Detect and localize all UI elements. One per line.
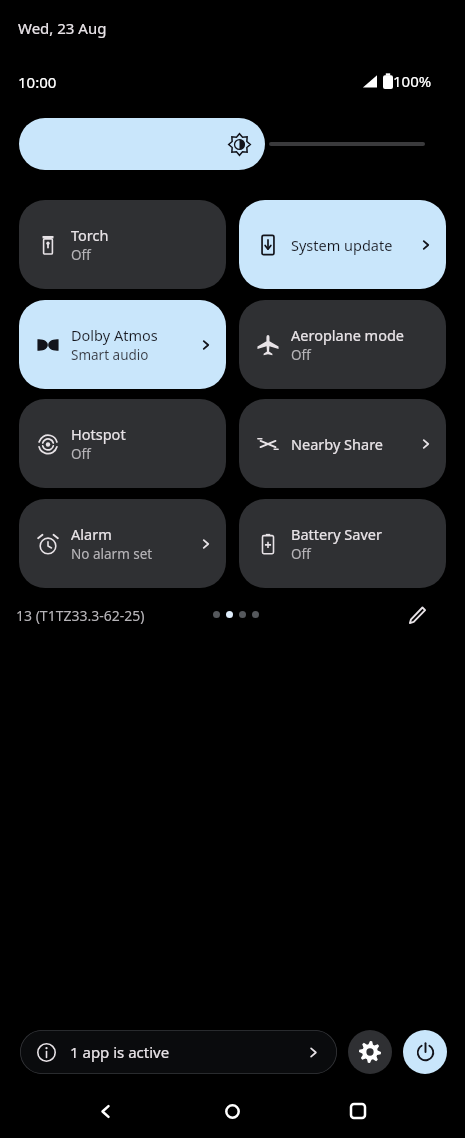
- staticText: 13 (T1TZ33.3-62-25): [16, 606, 145, 625]
- button[interactable]: Battery Saver: [239, 499, 446, 588]
- staticText: Smart audio: [71, 346, 149, 364]
- button[interactable]: System update: [239, 200, 446, 289]
- staticText: Aeroplane mode: [291, 325, 405, 345]
- button[interactable]: Power: [403, 1030, 447, 1074]
- button[interactable]: Dolby Atmos: [19, 300, 226, 389]
- button[interactable]: Nearby Share: [239, 399, 446, 488]
- button[interactable]: Torch: [19, 200, 226, 289]
- button[interactable]: Brightness: [19, 118, 425, 170]
- button[interactable]: Settings: [348, 1030, 392, 1074]
- staticText: Battery Saver: [291, 524, 382, 544]
- staticText: Off: [71, 445, 91, 463]
- button[interactable]: Back: [85, 1091, 125, 1131]
- button[interactable]: Home: [212, 1091, 252, 1131]
- staticText: 10:00: [18, 72, 57, 92]
- staticText: Wed, 23 Aug: [18, 18, 107, 38]
- staticText: Dolby Atmos: [71, 325, 158, 345]
- staticText: No alarm set: [71, 545, 153, 563]
- button[interactable]: Edit tiles: [400, 598, 434, 632]
- staticText: 1 app is active: [70, 1042, 170, 1062]
- staticText: Hotspot: [71, 424, 126, 444]
- staticText: Alarm: [71, 524, 112, 544]
- staticText: Torch: [71, 225, 109, 245]
- button[interactable]: 1 app is active: [20, 1030, 337, 1074]
- button[interactable]: Recents: [338, 1091, 378, 1131]
- staticText: Off: [291, 545, 311, 563]
- staticText: System update: [291, 235, 393, 255]
- button[interactable]: Aeroplane mode: [239, 300, 446, 389]
- staticText: Off: [71, 246, 91, 264]
- staticText: 100%: [393, 71, 432, 91]
- staticText: Nearby Share: [291, 434, 384, 454]
- staticText: Off: [291, 346, 311, 364]
- button[interactable]: Hotspot: [19, 399, 226, 488]
- button[interactable]: Alarm: [19, 499, 226, 588]
